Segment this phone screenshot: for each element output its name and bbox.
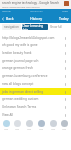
staticText: navigation xyxy=(4,25,19,29)
button[interactable]: More options xyxy=(60,88,71,96)
button[interactable]: Share target 2 xyxy=(24,118,35,131)
button[interactable]: Show full xyxy=(50,25,62,29)
staticText: Back xyxy=(6,16,14,21)
button[interactable]: Today xyxy=(58,14,71,23)
button[interactable]: More options xyxy=(60,80,71,88)
staticText: App xyxy=(51,128,56,131)
staticText: http://blogs2meanbl4.blogspot.com (32°C)… xyxy=(2,36,60,40)
button[interactable]: More options xyxy=(60,111,71,119)
button[interactable]: More options xyxy=(60,49,71,57)
button[interactable]: More options xyxy=(60,34,71,42)
staticText: History xyxy=(30,16,43,21)
button[interactable]: Share target 3 xyxy=(36,118,47,131)
button[interactable]: Clear browsing data xyxy=(22,24,48,30)
button[interactable]: oh good my wife is gone xyxy=(0,41,71,49)
button[interactable]: german wedding custom xyxy=(0,95,71,103)
button[interactable]: london beauty frank xyxy=(0,49,71,57)
button[interactable]: Share target 5 xyxy=(59,118,70,131)
button[interactable]: Unknown Search Terms xyxy=(0,103,71,111)
button[interactable]: new all blogs concept xyxy=(0,80,71,88)
staticText: german journal page sch xyxy=(2,59,60,63)
staticText: search engine technology - Google Search xyxy=(2,1,60,5)
button[interactable]: More options xyxy=(60,64,71,72)
staticText: Show full xyxy=(50,25,62,29)
button[interactable]: More options xyxy=(60,41,71,49)
staticText: oh good my wife is gone xyxy=(2,43,60,47)
button[interactable]: german-luxemburg-conference xyxy=(0,72,71,80)
staticText: App xyxy=(27,128,32,131)
staticText: german wedding custom xyxy=(2,97,60,101)
staticText: orange german fresh xyxy=(2,66,60,70)
staticText: Unknown Search Terms xyxy=(2,105,60,109)
staticText: Clear browsing data xyxy=(22,24,48,30)
staticText: App xyxy=(39,128,44,131)
button[interactable]: orange german fresh xyxy=(0,64,71,72)
staticText: Chrome xyxy=(2,10,11,13)
staticText: https://www.google.com/search xyxy=(2,5,40,8)
staticText: App xyxy=(15,128,20,131)
button[interactable]: View All xyxy=(0,111,71,119)
staticText: google.com xyxy=(30,10,43,13)
staticText: german-luxemburg-conference xyxy=(2,74,60,78)
button[interactable]: jobs in german direct selling xyxy=(0,88,71,96)
staticText: new all blogs concept xyxy=(2,82,60,86)
button[interactable]: More options xyxy=(60,103,71,111)
staticText: menu xyxy=(62,10,69,13)
staticText: Today xyxy=(59,16,69,21)
button[interactable]: Share target 4 xyxy=(48,118,59,131)
button[interactable]: More options xyxy=(60,95,71,103)
staticText: london beauty frank xyxy=(2,51,60,55)
staticText: App xyxy=(62,128,67,131)
button[interactable]: Browser icon xyxy=(64,1,69,6)
staticText: View All xyxy=(2,113,60,117)
button[interactable]: navigation xyxy=(2,24,21,30)
button[interactable]: Share target 0 xyxy=(1,118,12,131)
button[interactable]: http://blogs2meanbl4.blogspot.com (32°C)… xyxy=(0,34,71,42)
button[interactable]: Back xyxy=(0,14,16,23)
button[interactable]: Share target 1 xyxy=(12,118,23,131)
staticText: jobs in german direct selling xyxy=(2,90,60,94)
button[interactable]: More options xyxy=(60,57,71,65)
button[interactable]: More options xyxy=(60,72,71,80)
staticText: App xyxy=(4,128,9,131)
button[interactable]: german journal page sch xyxy=(0,57,71,65)
